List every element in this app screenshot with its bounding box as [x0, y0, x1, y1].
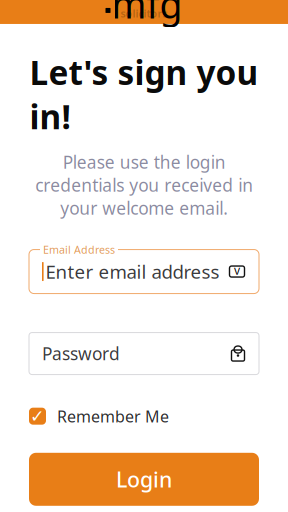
- staticText: ✓: [30, 406, 45, 426]
- staticText: Remember Me: [57, 405, 169, 427]
- staticText: Email Address: [43, 242, 115, 257]
- staticText: Please use the login credentials you rec…: [35, 150, 253, 220]
- staticText: solicitors: [120, 6, 167, 21]
- button[interactable]: ✓: [29, 399, 259, 433]
- staticText: mfg: [111, 0, 182, 29]
- staticText: v: [234, 262, 240, 278]
- staticText: Login: [116, 465, 172, 493]
- button[interactable]: Login: [29, 453, 259, 506]
- staticText: Password: [42, 342, 120, 365]
- staticText: Let's sign you in!: [29, 50, 258, 138]
- staticText: Enter email address: [46, 259, 220, 284]
